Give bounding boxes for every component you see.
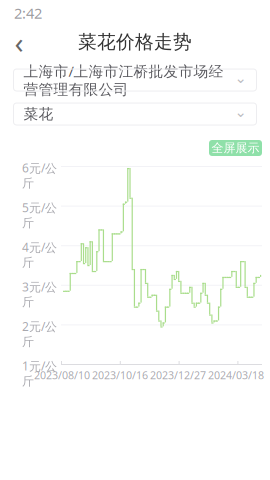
staticText: 6元/公斤 [22,160,57,191]
staticText: 2:42 [14,3,42,23]
staticText: 2023/08/10 [34,368,90,382]
staticText: 2元/公斤 [22,318,57,349]
staticText: 菜花 [23,105,53,123]
staticText: 5元/公斤 [22,200,57,230]
button[interactable]: 菜花 [13,103,256,125]
staticText: 上海市/上海市江桥批发市场经营管理有限公司 [23,61,223,99]
staticText: 1元/公斤 [22,358,57,389]
staticText: ⌄ [234,70,246,86]
staticText: 2023/12/27 [150,368,206,382]
button[interactable]: 全屏展示 [209,140,262,156]
staticText: 2024/03/18 [208,368,264,382]
staticText: ‹ [14,22,23,61]
staticText: 菜花价格走势 [78,30,192,53]
staticText: 全屏展示 [211,141,259,155]
staticText: 2023/10/16 [92,368,148,382]
staticText: ⌄ [234,104,246,120]
button[interactable]: 上海市/上海市江桥批发市场经营管理有限公司 [13,69,256,91]
staticText: 4元/公斤 [22,239,57,270]
button[interactable]: Back [4,28,34,56]
staticText: 3元/公斤 [22,279,57,309]
